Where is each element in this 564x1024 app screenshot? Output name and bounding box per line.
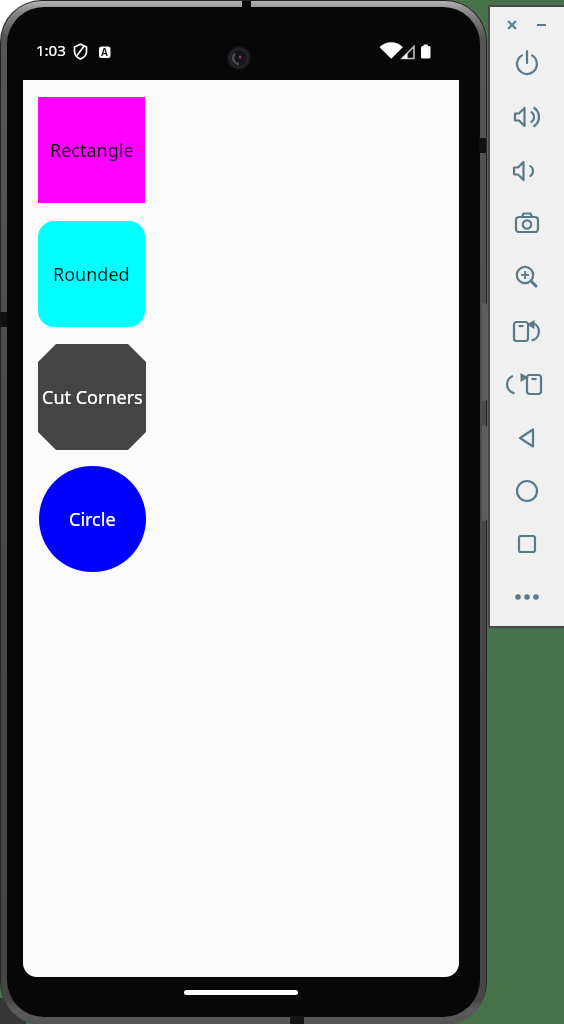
button[interactable] [505, 416, 549, 460]
button[interactable] [505, 522, 549, 566]
staticText: Rounded [53, 262, 130, 287]
button[interactable]: Rectangle [38, 97, 145, 203]
staticText: Cut Corners [42, 385, 143, 410]
button[interactable] [505, 202, 549, 246]
button[interactable]: Cut Corners [38, 344, 146, 450]
button[interactable] [505, 255, 549, 299]
button[interactable] [505, 575, 549, 619]
staticText: 1:03 [36, 40, 66, 60]
button[interactable] [505, 42, 549, 86]
staticText: Rectangle [50, 138, 134, 163]
button[interactable] [505, 469, 549, 513]
button[interactable] [505, 309, 549, 353]
button[interactable] [505, 95, 549, 139]
button[interactable] [531, 15, 551, 35]
staticText: Circle [69, 507, 116, 532]
button[interactable]: Circle [39, 466, 146, 572]
staticText: A [101, 45, 108, 59]
button[interactable] [502, 15, 522, 35]
button[interactable] [505, 362, 549, 406]
button[interactable] [505, 149, 549, 193]
button[interactable]: Rounded [38, 221, 145, 327]
